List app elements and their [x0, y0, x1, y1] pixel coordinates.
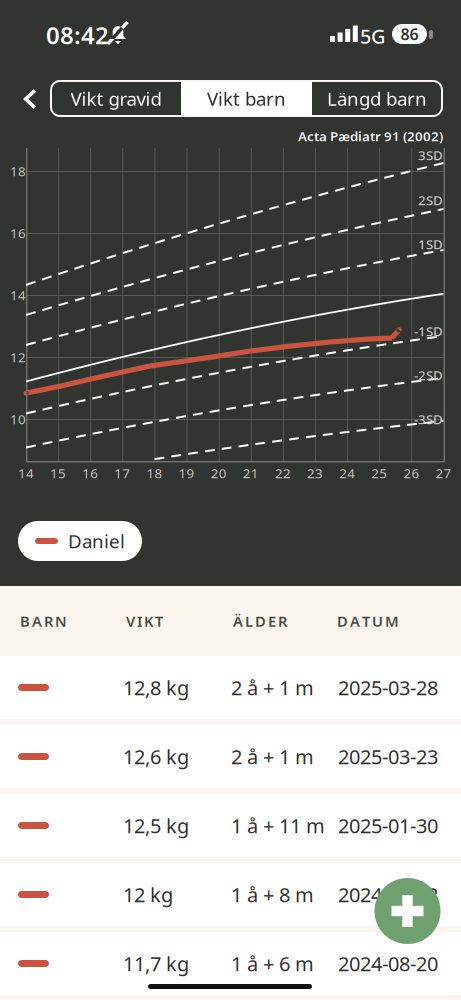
staticText: B A R N — [20, 611, 67, 631]
staticText: 1 å + 6 m — [231, 950, 314, 977]
button[interactable]: Add measurement — [374, 878, 440, 944]
button[interactable]: Längd barn — [312, 81, 442, 116]
button[interactable]: Vikt gravid — [51, 81, 181, 116]
staticText: 16 — [10, 224, 26, 242]
staticText: 26 — [403, 464, 419, 482]
staticText: 18 — [10, 162, 26, 180]
staticText: -2SD — [414, 366, 443, 384]
staticText: 17 — [114, 464, 130, 482]
staticText: 12,5 kg — [123, 812, 189, 839]
staticText: 1 å + 8 m — [231, 881, 314, 908]
staticText: 1 å + 11 m — [231, 812, 325, 839]
staticText: 25 — [371, 464, 387, 482]
button[interactable]: Daniel — [18, 521, 142, 561]
staticText: 14 — [18, 464, 34, 482]
button[interactable]: 12,6 kg — [0, 725, 461, 788]
button[interactable]: 12,5 kg — [0, 794, 461, 857]
staticText: 23 — [307, 464, 323, 482]
staticText: 10 — [10, 410, 26, 428]
staticText: 2025-03-23 — [338, 743, 438, 770]
staticText: 22 — [275, 464, 291, 482]
staticText: 24 — [339, 464, 355, 482]
staticText: V I K T — [126, 611, 163, 631]
staticText: 1SD — [418, 235, 443, 253]
staticText: 16 — [82, 464, 98, 482]
staticText: -3SD — [414, 410, 443, 428]
staticText: 2SD — [418, 191, 443, 209]
staticText: 2 å + 1 m — [231, 674, 314, 701]
staticText: 2024-12-12 — [338, 881, 438, 908]
staticText: 3SD — [418, 146, 443, 164]
button[interactable]: 12,8 kg — [0, 656, 461, 719]
button[interactable]: 12 kg — [0, 863, 461, 926]
staticText: D A T U M — [337, 611, 399, 631]
staticText: 19 — [179, 464, 195, 482]
staticText: 12 kg — [123, 881, 173, 908]
staticText: 2 å + 1 m — [231, 743, 314, 770]
button[interactable]: 11,7 kg — [0, 932, 461, 995]
staticText: 18 — [146, 464, 162, 482]
staticText: Längd barn — [327, 86, 427, 111]
staticText: -1SD — [414, 322, 443, 340]
staticText: 12,6 kg — [123, 743, 189, 770]
staticText: 12,8 kg — [123, 674, 189, 701]
staticText: 15 — [50, 464, 66, 482]
staticText: 21 — [243, 464, 259, 482]
staticText: 2025-01-30 — [338, 812, 438, 839]
button[interactable]: Vikt barn — [181, 81, 312, 116]
staticText: Vikt gravid — [70, 86, 161, 111]
staticText: 08:42 — [46, 19, 109, 51]
staticText: Daniel — [68, 529, 125, 553]
staticText: 14 — [10, 286, 26, 304]
staticText: Acta Pædiatr 91 (2002) — [298, 127, 443, 145]
staticText: 2025-03-28 — [338, 674, 438, 701]
staticText: 11,7 kg — [123, 950, 189, 977]
staticText: 27 — [435, 464, 451, 482]
staticText: 5G — [360, 23, 386, 49]
staticText: Vikt barn — [207, 86, 286, 111]
staticText: 86 — [400, 23, 418, 45]
staticText: Ä L D E R — [233, 611, 287, 631]
staticText: 2024-08-20 — [338, 950, 438, 977]
staticText: 20 — [211, 464, 227, 482]
staticText: 12 — [10, 348, 26, 366]
